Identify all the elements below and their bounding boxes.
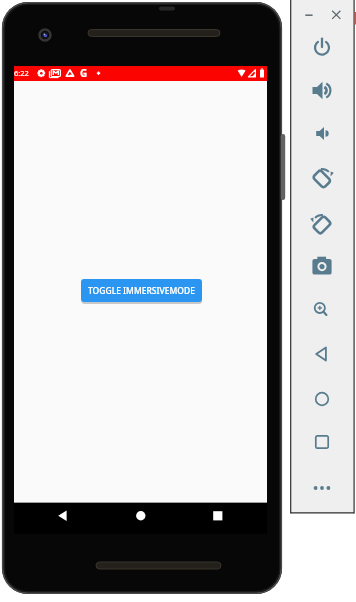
button[interactable]: [311, 477, 333, 499]
button[interactable]: [311, 388, 333, 410]
button[interactable]: [207, 506, 229, 526]
button[interactable]: [311, 431, 333, 453]
button[interactable]: [329, 8, 343, 22]
button[interactable]: [311, 80, 333, 102]
button[interactable]: [311, 166, 333, 188]
staticText: TOGGLE IMMERSIVEMODE: [88, 285, 195, 297]
button[interactable]: [302, 8, 316, 22]
button[interactable]: [130, 506, 152, 526]
button[interactable]: [311, 37, 333, 59]
button[interactable]: [311, 123, 333, 145]
button[interactable]: [311, 299, 333, 321]
button[interactable]: [52, 506, 74, 526]
staticText: G: [80, 66, 88, 80]
button[interactable]: [311, 343, 333, 365]
button[interactable]: [311, 256, 333, 278]
button[interactable]: [311, 213, 333, 235]
button[interactable]: TOGGLE IMMERSIVEMODE: [81, 279, 202, 302]
staticText: 6:22: [14, 68, 29, 78]
